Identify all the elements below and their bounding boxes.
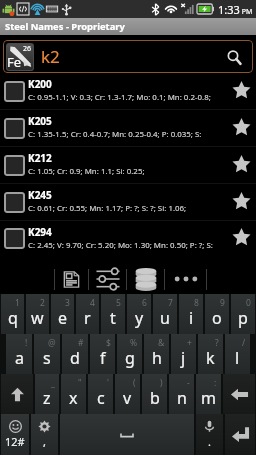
button[interactable]: ( <box>115 374 140 414</box>
staticText: K212 <box>28 151 52 165</box>
staticText: ? <box>215 337 219 349</box>
staticText: " <box>78 377 82 389</box>
staticText: 2 <box>40 297 45 309</box>
button[interactable]: / <box>225 334 250 374</box>
staticText: K294 <box>28 225 52 239</box>
staticText: k <box>206 347 215 369</box>
button[interactable]: ) <box>142 374 167 414</box>
staticText: / <box>242 337 246 349</box>
button[interactable]: 0 <box>231 294 255 334</box>
staticText: h <box>152 347 162 369</box>
staticText: % <box>130 337 138 349</box>
staticText: r <box>84 307 91 329</box>
staticText: 6 <box>142 297 147 309</box>
button[interactable]: ? <box>198 334 223 374</box>
button[interactable]: Voice input <box>196 414 223 455</box>
staticText: - <box>187 377 190 389</box>
button[interactable]: K245 <box>0 184 256 220</box>
button[interactable]: K212 <box>0 147 256 183</box>
staticText: K200 <box>28 77 52 91</box>
button[interactable]: Favourite <box>226 73 256 109</box>
button[interactable]: : <box>196 374 221 414</box>
button[interactable]: Enter <box>225 414 255 455</box>
button[interactable]: More options <box>165 266 206 292</box>
button[interactable]: - <box>169 374 194 414</box>
button[interactable]: Backspace <box>223 374 255 414</box>
button[interactable]: Symbols <box>1 414 29 455</box>
staticText: v <box>123 387 132 409</box>
staticText: x <box>69 387 78 409</box>
button[interactable]: Space <box>60 414 194 455</box>
staticText: C: 0.61; Cr: 0.55; Mn: 1.17; P: ?; S: ?;… <box>28 203 187 214</box>
button[interactable]: ' <box>88 374 113 414</box>
button[interactable]: % <box>117 334 142 374</box>
button[interactable]: Settings <box>31 414 58 455</box>
button[interactable]: Shift <box>1 374 33 414</box>
staticText: : <box>214 377 217 389</box>
staticText: K205 <box>28 114 52 128</box>
staticText: s <box>43 347 51 369</box>
button[interactable]: 1 <box>1 294 24 334</box>
staticText: 3 <box>65 297 70 309</box>
button[interactable]: Filters <box>89 266 126 292</box>
button[interactable]: + <box>171 334 196 374</box>
staticText: b <box>150 387 160 409</box>
staticText: Fe <box>7 53 22 70</box>
button[interactable]: ! <box>6 334 32 374</box>
staticText: K245 <box>28 188 52 202</box>
button[interactable]: K205 <box>0 110 256 146</box>
staticText: $ <box>106 337 111 349</box>
button[interactable]: Favourite <box>226 110 256 146</box>
button[interactable]: 6 <box>127 294 151 334</box>
button[interactable]: 26 <box>3 40 253 73</box>
staticText: t <box>110 307 116 329</box>
staticText: k2 <box>41 45 60 68</box>
button[interactable]: Favourite <box>226 221 256 256</box>
button[interactable]: _ <box>35 374 59 414</box>
button[interactable]: K200 <box>0 73 256 109</box>
button[interactable]: 7 <box>153 294 177 334</box>
staticText: C: 1.05; Cr: 0.9; Mn: 1.1; Si: 0.25; <box>28 166 145 177</box>
button[interactable]: Search <box>221 44 247 70</box>
button[interactable]: 2 <box>26 294 49 334</box>
staticText: ' <box>107 377 109 389</box>
staticText: C: 0.95-1.1; V: 0.3; Cr: 1.3-1.7; Mo: 0.… <box>28 92 211 103</box>
button[interactable]: Document <box>55 266 88 292</box>
staticText: Steel Names - Proprietary <box>5 20 125 33</box>
staticText: z <box>43 387 51 409</box>
staticText: 26 <box>23 44 32 54</box>
staticText: @ <box>48 337 56 349</box>
staticText: j <box>181 347 186 369</box>
button[interactable]: @ <box>34 334 60 374</box>
staticText: ) <box>160 377 163 389</box>
staticText: n <box>177 387 187 409</box>
button[interactable]: Favourite <box>226 184 256 220</box>
staticText: 12# <box>5 434 25 449</box>
button[interactable]: 5 <box>101 294 125 334</box>
button[interactable]: $ <box>90 334 115 374</box>
button[interactable]: 3 <box>51 294 74 334</box>
button[interactable]: " <box>61 374 86 414</box>
button[interactable]: Database <box>127 266 164 292</box>
staticText: 8 <box>194 297 199 309</box>
button[interactable]: # <box>62 334 88 374</box>
staticText: y <box>135 307 144 329</box>
staticText: m <box>201 387 216 409</box>
staticText: 9 <box>220 297 225 309</box>
staticText: e <box>58 307 68 329</box>
button[interactable]: 4 <box>76 294 99 334</box>
staticText: 4 <box>90 297 95 309</box>
staticText: 0 <box>246 297 251 309</box>
staticText: f <box>100 347 106 369</box>
staticText: _ <box>51 377 55 389</box>
staticText: 1 <box>15 297 20 309</box>
button[interactable]: Favourite <box>226 147 256 183</box>
button[interactable]: K294 <box>0 221 256 256</box>
staticText: d <box>70 347 80 369</box>
button[interactable]: 8 <box>179 294 203 334</box>
staticText: u <box>160 307 170 329</box>
button[interactable]: 9 <box>205 294 229 334</box>
button[interactable]: & <box>144 334 169 374</box>
staticText: PM <box>240 7 253 17</box>
staticText: ( <box>133 377 136 389</box>
